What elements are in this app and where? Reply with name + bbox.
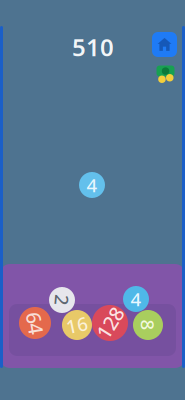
- button[interactable]: Coins: [155, 61, 175, 81]
- staticText: 128: [93, 310, 126, 336]
- button[interactable]: Home: [152, 32, 177, 57]
- staticText: 64: [24, 310, 46, 336]
- staticText: 16: [66, 313, 88, 337]
- staticText: 8: [142, 313, 153, 337]
- staticText: 2: [56, 288, 67, 312]
- staticText: 510: [72, 31, 114, 63]
- staticText: 4: [86, 173, 97, 197]
- staticText: 4: [130, 287, 141, 311]
